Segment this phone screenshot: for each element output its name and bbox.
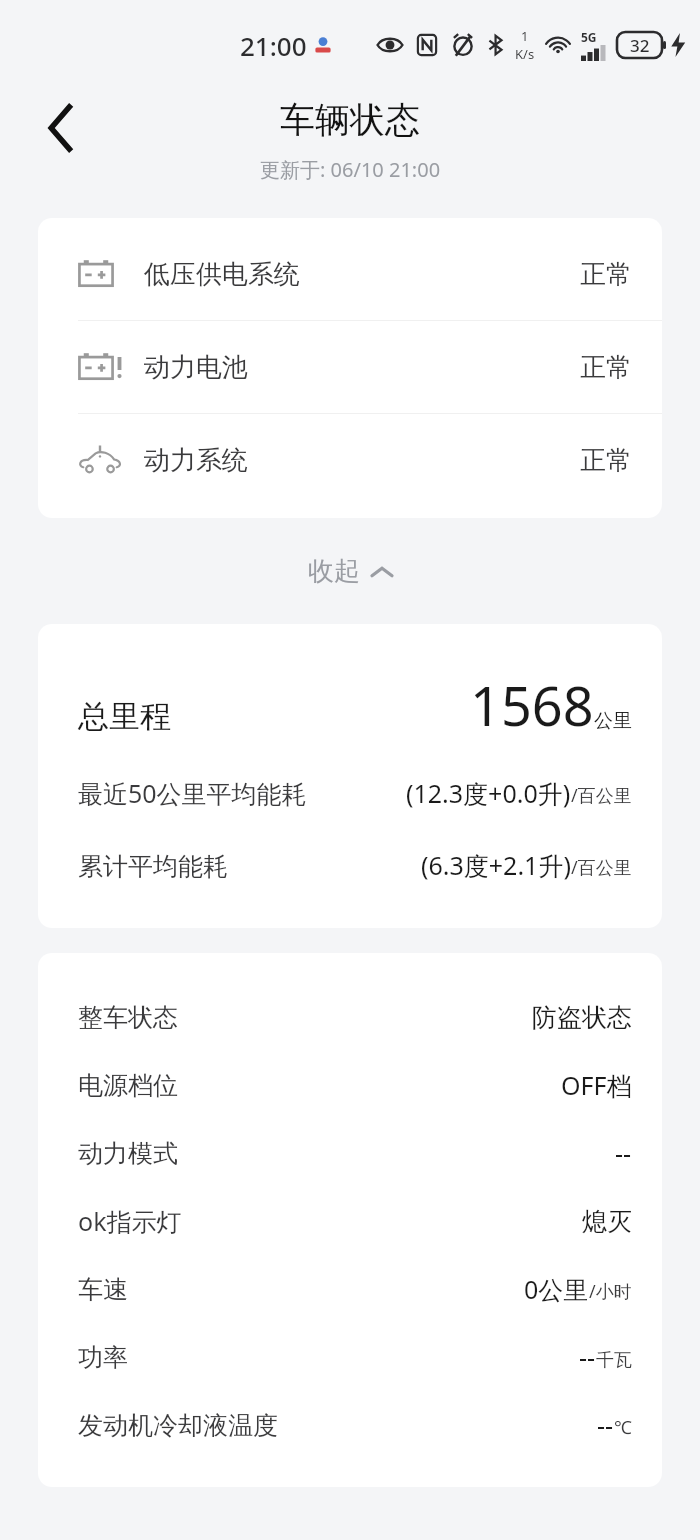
staticText: /百公里 bbox=[571, 783, 632, 808]
staticText: 收起 bbox=[308, 555, 360, 588]
staticText: 动力模式 bbox=[78, 1138, 178, 1169]
staticText: 整车状态 bbox=[78, 1002, 178, 1033]
staticText: OFF档 bbox=[561, 1068, 632, 1102]
staticText: /百公里 bbox=[571, 855, 632, 880]
staticText: 车速 bbox=[78, 1274, 128, 1305]
button[interactable]: 功率 bbox=[78, 1323, 632, 1391]
staticText: 5G bbox=[581, 29, 597, 45]
staticText: 1 bbox=[521, 27, 529, 45]
button[interactable]: 返回 bbox=[28, 96, 92, 160]
staticText: -- bbox=[597, 1408, 614, 1442]
button[interactable]: 车速 bbox=[78, 1255, 632, 1323]
staticText: 防盗状态 bbox=[532, 1002, 632, 1033]
staticText: 公里 bbox=[594, 709, 632, 733]
staticText: 动力系统 bbox=[144, 444, 248, 477]
staticText: 电源档位 bbox=[78, 1070, 178, 1101]
staticText: 正常 bbox=[580, 444, 632, 477]
staticText: 总里程 bbox=[78, 697, 171, 736]
button[interactable]: 电源档位 bbox=[78, 1051, 632, 1119]
button[interactable]: 发动机冷却液温度 bbox=[78, 1391, 632, 1459]
staticText: 发动机冷却液温度 bbox=[78, 1410, 278, 1441]
button[interactable]: 动力模式 bbox=[78, 1119, 632, 1187]
staticText: 熄灭 bbox=[582, 1206, 632, 1237]
staticText: 32 bbox=[630, 34, 650, 57]
staticText: 最近50公里平均能耗 bbox=[78, 776, 307, 810]
staticText: 动力电池 bbox=[144, 351, 248, 384]
button[interactable]: ok指示灯 bbox=[78, 1187, 632, 1255]
button[interactable]: 动力系统 bbox=[38, 414, 662, 506]
staticText: 21:00 bbox=[240, 28, 307, 63]
staticText: 千瓦 bbox=[596, 1349, 632, 1372]
staticText: 正常 bbox=[580, 258, 632, 291]
button[interactable]: 收起 bbox=[282, 541, 418, 602]
button[interactable]: 低压供电系统 bbox=[38, 228, 662, 321]
staticText: (6.3度+2.1升) bbox=[421, 848, 571, 882]
staticText: K/s bbox=[515, 45, 535, 63]
staticText: /小时 bbox=[589, 1279, 632, 1304]
staticText: ℃ bbox=[614, 1415, 632, 1440]
staticText: 更新于: 06/10 21:00 bbox=[260, 156, 441, 183]
staticText: 低压供电系统 bbox=[144, 258, 300, 291]
staticText: 功率 bbox=[78, 1342, 128, 1373]
staticText: -- bbox=[579, 1340, 596, 1374]
button[interactable]: 整车状态 bbox=[78, 983, 632, 1051]
button[interactable]: 动力电池 bbox=[38, 321, 662, 414]
staticText: -- bbox=[615, 1136, 632, 1170]
staticText: 0公里 bbox=[524, 1272, 589, 1306]
staticText: ok指示灯 bbox=[78, 1204, 182, 1238]
staticText: (12.3度+0.0升) bbox=[406, 776, 571, 810]
staticText: 车辆状态 bbox=[280, 98, 420, 142]
staticText: 1568 bbox=[470, 668, 594, 742]
staticText: 正常 bbox=[580, 351, 632, 384]
staticText: 累计平均能耗 bbox=[78, 851, 228, 882]
